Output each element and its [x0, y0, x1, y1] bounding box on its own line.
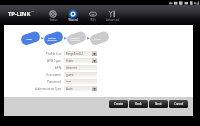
button[interactable]: Auto	[64, 86, 97, 91]
button[interactable]: Dial-up Settings	[40, 33, 59, 44]
button[interactable]: Next	[149, 100, 168, 108]
button[interactable]: Back	[129, 100, 148, 108]
staticText: Wizard	[68, 18, 78, 22]
staticText: internet	[66, 66, 77, 70]
button[interactable]: Finish	[86, 33, 105, 44]
staticText: RingoFireO2	[66, 52, 83, 56]
button[interactable]: internet	[64, 65, 97, 70]
staticText: guest	[66, 73, 74, 77]
other: Wizard	[69, 10, 77, 18]
button[interactable]: Wireless Settings	[63, 33, 82, 44]
button[interactable]: Create	[109, 100, 128, 108]
button[interactable]: Cancel	[169, 100, 188, 108]
staticText: Authentication Type	[35, 87, 61, 91]
button[interactable]: Static	[64, 58, 97, 63]
staticText: Cancel	[174, 102, 184, 106]
staticText: Back	[135, 102, 142, 106]
staticText: APN Type	[47, 59, 61, 63]
button[interactable]: •••••	[64, 79, 97, 84]
staticText: Username	[45, 73, 61, 77]
button[interactable]: RingoFireO2	[64, 51, 97, 56]
button[interactable]: Advanced	[101, 5, 123, 25]
button[interactable]: Wizard	[62, 5, 84, 25]
button[interactable]: Status	[42, 5, 64, 25]
staticText: Dial-up Settings	[47, 36, 57, 42]
staticText: Start	[26, 37, 32, 40]
staticText: Password	[47, 80, 61, 84]
staticText: Status	[49, 18, 58, 22]
button[interactable]: WiFi	[82, 5, 104, 25]
other: Status	[49, 10, 57, 18]
staticText: WiFi	[90, 18, 96, 22]
staticText: Auto	[66, 87, 73, 91]
staticText: Static	[66, 59, 74, 63]
staticText: TP-LINK	[8, 10, 31, 18]
staticText: Finish	[94, 37, 101, 40]
staticText: Advanced	[106, 18, 119, 22]
other: WiFi	[89, 10, 97, 18]
staticText: Profile List	[45, 52, 61, 56]
staticText: Create	[114, 102, 124, 106]
staticText: TM	[31, 10, 35, 13]
other: Advanced	[108, 10, 116, 18]
staticText: APN	[54, 66, 61, 70]
staticText: Wireless Settings	[70, 36, 80, 42]
button[interactable]: guest	[64, 72, 97, 77]
staticText: Next	[155, 102, 162, 106]
button[interactable]: Start	[17, 33, 36, 44]
staticText: •••••	[66, 80, 72, 84]
